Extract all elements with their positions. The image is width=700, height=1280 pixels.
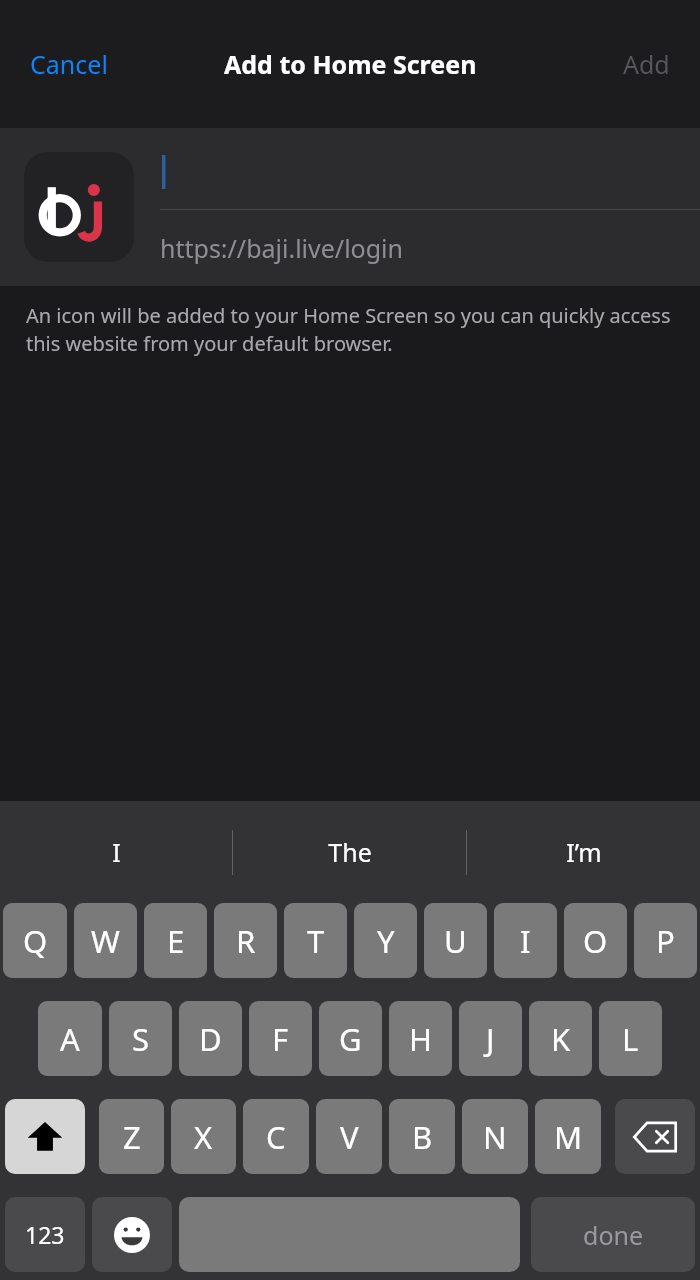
staticText: The [328, 835, 372, 869]
button[interactable]: https://baji.live/login [160, 210, 700, 286]
staticText: 123 [25, 1219, 65, 1250]
button[interactable]: Z [99, 1099, 164, 1174]
staticText: W [91, 920, 120, 962]
staticText: V [340, 1116, 359, 1158]
button[interactable]: K [529, 1001, 592, 1076]
button[interactable]: S [109, 1001, 172, 1076]
staticText: J [486, 1018, 495, 1060]
staticText: P [656, 920, 675, 962]
button[interactable]: Y [354, 903, 417, 978]
button[interactable]: Emoji [92, 1197, 172, 1272]
staticText: Q [23, 920, 48, 962]
staticText: L [622, 1018, 639, 1060]
button[interactable]: A [38, 1001, 102, 1076]
button[interactable]: O [564, 903, 627, 978]
staticText: I [112, 835, 121, 869]
button[interactable] [160, 128, 700, 209]
button[interactable]: Shift [5, 1099, 85, 1174]
button[interactable]: 123 [5, 1197, 85, 1272]
button[interactable]: B [389, 1099, 455, 1174]
button[interactable]: I [494, 903, 557, 978]
button[interactable]: P [634, 903, 697, 978]
staticText: E [167, 920, 185, 962]
staticText: Z [123, 1116, 141, 1158]
button[interactable]: W [74, 903, 137, 978]
button[interactable]: R [214, 903, 277, 978]
staticText: G [339, 1018, 362, 1060]
button[interactable]: T [284, 903, 347, 978]
button[interactable]: C [243, 1099, 309, 1174]
button[interactable]: Backspace [615, 1099, 695, 1174]
button[interactable]: D [179, 1001, 242, 1076]
button[interactable]: X [171, 1099, 236, 1174]
staticText: Cancel [30, 47, 108, 81]
button[interactable]: Add [611, 37, 682, 91]
staticText: F [272, 1018, 289, 1060]
staticText: H [409, 1018, 432, 1060]
staticText: U [444, 920, 467, 962]
button[interactable]: I’m [467, 801, 700, 903]
staticText: X [194, 1116, 213, 1158]
staticText: Y [377, 920, 395, 962]
button[interactable]: F [249, 1001, 312, 1076]
staticText: done [583, 1218, 644, 1252]
staticText: An icon will be added to your Home Scree… [26, 302, 674, 357]
button[interactable]: The [233, 801, 466, 903]
staticText: D [199, 1018, 222, 1060]
button[interactable]: G [319, 1001, 382, 1076]
button[interactable]: Cancel [18, 37, 120, 91]
staticText: Add to Home Screen [224, 47, 477, 81]
button[interactable]: H [389, 1001, 452, 1076]
staticText: https://baji.live/login [160, 231, 404, 265]
staticText: A [60, 1018, 80, 1060]
staticText: K [551, 1018, 571, 1060]
staticText: I’m [566, 835, 602, 869]
staticText: O [583, 920, 608, 962]
button[interactable]: U [424, 903, 487, 978]
button[interactable]: Space [179, 1197, 520, 1272]
staticText: R [236, 920, 256, 962]
staticText: T [307, 920, 325, 962]
button[interactable]: Q [3, 903, 67, 978]
staticText: B [412, 1116, 433, 1158]
button[interactable]: M [535, 1099, 601, 1174]
button[interactable]: done [531, 1197, 695, 1272]
button[interactable]: N [462, 1099, 528, 1174]
button[interactable]: V [316, 1099, 382, 1174]
button[interactable]: J [459, 1001, 522, 1076]
staticText: C [266, 1116, 286, 1158]
staticText: I [520, 920, 531, 962]
staticText: N [483, 1116, 507, 1158]
button[interactable]: L [599, 1001, 662, 1076]
button[interactable]: E [144, 903, 207, 978]
staticText: S [132, 1018, 150, 1060]
staticText: M [554, 1116, 583, 1158]
button[interactable]: I [0, 801, 232, 903]
staticText: Add [623, 47, 670, 81]
